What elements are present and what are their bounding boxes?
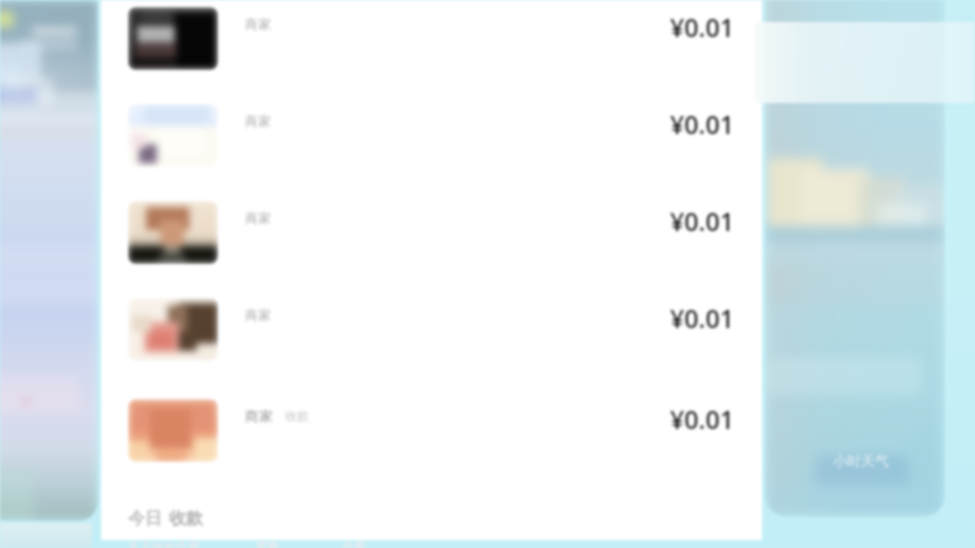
staticText: ¥0.01 [670, 107, 735, 141]
staticText: ¥0.01 [670, 204, 735, 238]
staticText: 金额 [342, 539, 366, 548]
button[interactable]: 商家 [128, 298, 735, 370]
staticText: 今日 [128, 508, 162, 529]
staticText: 商家 [245, 210, 271, 226]
staticText: ¥0.01 [670, 402, 735, 436]
staticText: 收款 [169, 508, 203, 529]
staticText: 商家 [245, 16, 271, 32]
staticText: 收款 [285, 408, 309, 423]
staticText: 小时天气 [833, 453, 889, 471]
staticText: 商家 [245, 307, 271, 323]
staticText: ¥0.01 [670, 10, 735, 44]
button[interactable]: 商家 [128, 201, 735, 273]
staticText: 商家 [245, 408, 273, 426]
staticText: 商家 [245, 113, 271, 129]
button[interactable]: 商家 [128, 399, 735, 471]
staticText: 笔数 [256, 539, 280, 548]
button[interactable]: 商家 [128, 7, 735, 79]
staticText: 本月收款金额 [128, 539, 200, 548]
button[interactable]: 商家 [128, 104, 735, 176]
staticText: ¥0.01 [670, 301, 735, 335]
